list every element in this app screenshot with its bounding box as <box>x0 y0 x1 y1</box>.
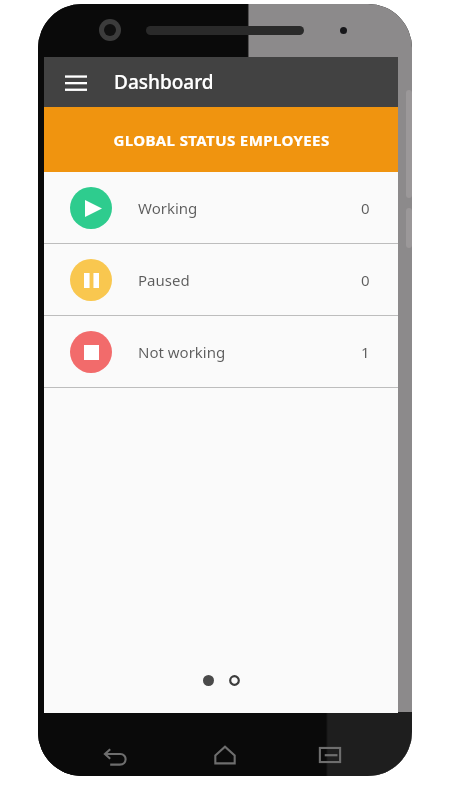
button[interactable]: Page 2 <box>223 669 245 691</box>
button[interactable]: Page 1 <box>197 669 219 691</box>
staticText: GLOBAL STATUS EMPLOYEES <box>113 130 330 150</box>
button[interactable]: Not working <box>44 316 398 387</box>
staticText: Dashboard <box>114 69 214 95</box>
button[interactable]: Working <box>44 172 398 243</box>
button[interactable]: Back <box>95 735 135 775</box>
staticText: 0 <box>361 270 370 290</box>
button[interactable]: Recent apps <box>310 735 350 775</box>
staticText: Working <box>138 198 198 218</box>
button[interactable]: Paused <box>44 244 398 315</box>
staticText: Paused <box>138 270 190 290</box>
button[interactable]: Home <box>205 735 245 775</box>
staticText: 1 <box>361 342 370 362</box>
button[interactable]: Open navigation menu <box>56 62 96 102</box>
staticText: Not working <box>138 342 226 362</box>
staticText: 0 <box>361 198 370 218</box>
